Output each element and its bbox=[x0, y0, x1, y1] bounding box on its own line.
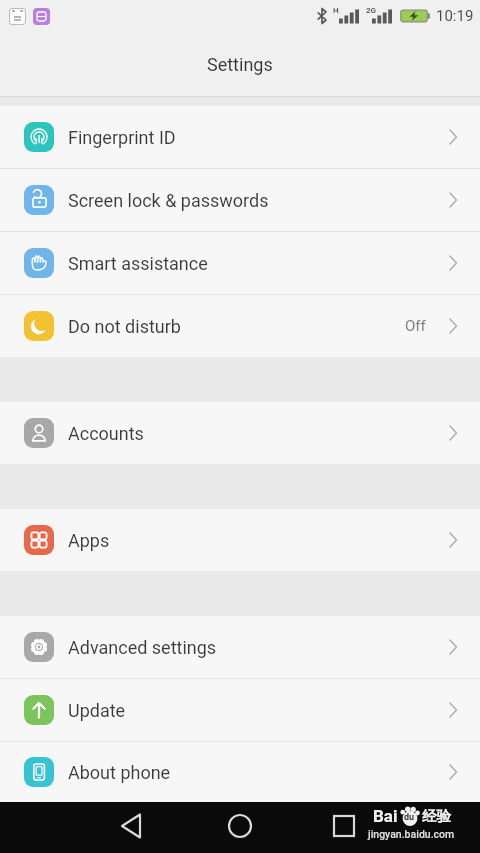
staticText: About phone bbox=[68, 762, 171, 783]
staticText: Advanced settings bbox=[68, 637, 217, 658]
staticText: jingyan.baidu.com bbox=[368, 828, 455, 840]
staticText: Accounts bbox=[68, 423, 144, 444]
staticText: Settings bbox=[207, 54, 273, 75]
button[interactable] bbox=[114, 808, 150, 844]
button[interactable]: Fingerprint ID bbox=[0, 106, 480, 168]
button[interactable] bbox=[222, 808, 258, 844]
button[interactable]: Advanced settings bbox=[0, 616, 480, 678]
staticText: Do not disturb bbox=[68, 316, 181, 337]
staticText: Fingerprint ID bbox=[68, 127, 176, 148]
staticText: Off bbox=[405, 317, 426, 335]
button[interactable]: Screen lock & passwords bbox=[0, 169, 480, 231]
staticText: Smart assistance bbox=[68, 253, 208, 274]
button[interactable]: Apps bbox=[0, 509, 480, 571]
button[interactable]: Update bbox=[0, 679, 480, 741]
staticText: 2G bbox=[366, 6, 377, 15]
button[interactable]: Accounts bbox=[0, 402, 480, 464]
staticText: Bai bbox=[373, 806, 398, 826]
staticText: Screen lock & passwords bbox=[68, 190, 269, 211]
staticText: du bbox=[404, 812, 415, 823]
staticText: Update bbox=[68, 700, 126, 721]
button[interactable]: Do not disturb bbox=[0, 295, 480, 357]
staticText: 经验 bbox=[422, 807, 451, 825]
staticText: H bbox=[333, 6, 339, 15]
staticText: 10:19 bbox=[436, 7, 474, 25]
button[interactable] bbox=[326, 808, 362, 844]
button[interactable]: About phone bbox=[0, 742, 480, 802]
staticText: Apps bbox=[68, 530, 110, 551]
button[interactable]: Smart assistance bbox=[0, 232, 480, 294]
